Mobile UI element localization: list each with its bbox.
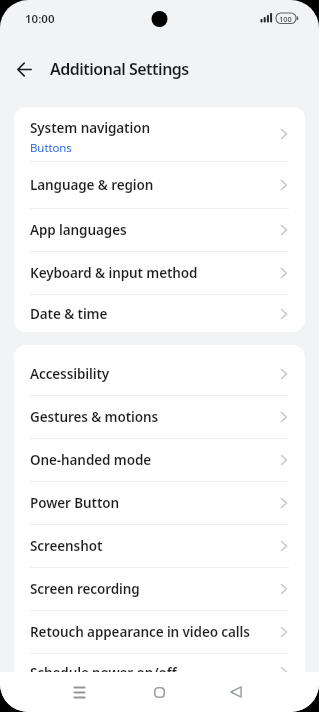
button[interactable]: Screen recording bbox=[14, 568, 305, 610]
staticText: Buttons bbox=[30, 140, 72, 156]
staticText: Screenshot bbox=[30, 537, 103, 555]
staticText: Keyboard & input method bbox=[30, 264, 198, 282]
staticText: Language & region bbox=[30, 176, 154, 194]
staticText: Accessibility bbox=[30, 365, 110, 383]
button[interactable]: System navigation bbox=[14, 107, 305, 161]
staticText: Power Button bbox=[30, 494, 120, 512]
button[interactable] bbox=[139, 672, 179, 712]
button[interactable]: Schedule power on/off bbox=[14, 654, 305, 696]
staticText: System navigation bbox=[30, 119, 150, 137]
button[interactable] bbox=[9, 54, 39, 84]
staticText: 100 bbox=[279, 14, 292, 24]
button[interactable]: Keyboard & input method bbox=[14, 252, 305, 294]
button[interactable]: App languages bbox=[14, 209, 305, 251]
staticText: Schedule power on/off bbox=[30, 664, 177, 682]
button[interactable]: Screenshot bbox=[14, 525, 305, 567]
staticText: App languages bbox=[30, 221, 127, 239]
button[interactable]: Language & region bbox=[14, 162, 305, 208]
staticText: Retouch appearance in video calls bbox=[30, 623, 250, 641]
button[interactable]: Gestures & motions bbox=[14, 396, 305, 438]
staticText: Gestures & motions bbox=[30, 408, 159, 426]
staticText: Screen recording bbox=[30, 580, 140, 598]
staticText: 10:00 bbox=[25, 11, 55, 27]
button[interactable]: Retouch appearance in video calls bbox=[14, 611, 305, 653]
button[interactable] bbox=[59, 672, 99, 712]
button[interactable]: Date & time bbox=[14, 295, 305, 332]
button[interactable]: Accessibility bbox=[14, 353, 305, 395]
staticText: Additional Settings bbox=[50, 58, 189, 80]
button[interactable]: Power Button bbox=[14, 482, 305, 524]
button[interactable]: One-handed mode bbox=[14, 439, 305, 481]
button[interactable] bbox=[216, 672, 256, 712]
staticText: Date & time bbox=[30, 305, 108, 323]
staticText: One-handed mode bbox=[30, 451, 152, 469]
